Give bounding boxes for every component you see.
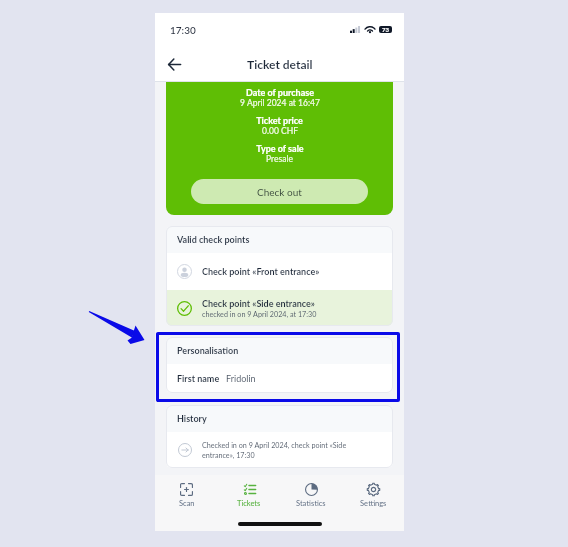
staticText: Fridolin [226, 373, 256, 384]
staticText: First name [177, 373, 220, 384]
staticText: Presale [266, 154, 293, 164]
button[interactable]: Check point «Side entrance» [166, 290, 393, 326]
staticText: 73 [382, 26, 389, 33]
button[interactable]: Scan [155, 475, 218, 516]
staticText: Tickets [237, 499, 261, 508]
staticText: Scan [179, 499, 195, 508]
staticText: History [177, 413, 207, 424]
button[interactable]: Check point «Front entrance» [166, 253, 393, 290]
button[interactable]: Statistics [280, 475, 342, 516]
staticText: Check out [257, 186, 302, 198]
button[interactable]: Check out [191, 179, 368, 204]
staticText: Valid check points [177, 234, 250, 245]
staticText: Settings [360, 499, 387, 508]
staticText: Check point «Side entrance» [202, 298, 315, 309]
staticText: Type of sale [256, 143, 304, 154]
staticText: 0.00 CHF [262, 126, 298, 136]
staticText: Check point «Front entrance» [202, 266, 320, 277]
button[interactable]: Back [161, 51, 187, 77]
staticText: Statistics [296, 499, 326, 508]
staticText: Personalisation [177, 345, 239, 356]
staticText: Ticket price [256, 115, 303, 126]
button[interactable]: Checked in on 9 April 2024, check point … [166, 432, 393, 468]
staticText: Checked in on 9 April 2024, check point … [202, 441, 350, 460]
staticText: Date of purchase [246, 87, 314, 98]
button[interactable]: First name [166, 364, 393, 393]
staticText: 17:30 [170, 24, 196, 36]
staticText: Ticket detail [247, 57, 313, 71]
button[interactable]: Settings [342, 475, 404, 516]
button[interactable]: Tickets [218, 475, 280, 516]
staticText: checked in on 9 April 2024, at 17:30 [202, 310, 317, 319]
staticText: 9 April 2024 at 16:47 [240, 98, 320, 108]
